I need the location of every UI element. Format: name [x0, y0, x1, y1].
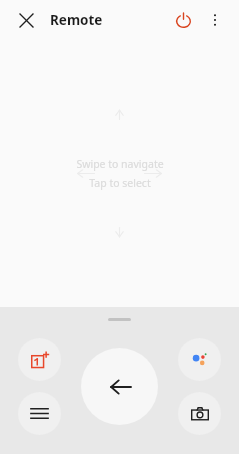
staticText: Swipe to navigate: [76, 157, 164, 171]
button[interactable]: Google Assistant: [178, 338, 221, 381]
button[interactable]: More options: [199, 4, 231, 36]
button[interactable]: Menu: [18, 392, 61, 435]
button[interactable]: OnePlus: [18, 338, 61, 381]
button[interactable]: Camera: [178, 392, 221, 435]
staticText: Tap to select: [89, 176, 151, 190]
button[interactable]: Close: [12, 6, 40, 34]
button[interactable]: Back: [81, 348, 158, 425]
button[interactable]: Power: [167, 4, 199, 36]
staticText: Remote: [50, 11, 103, 29]
